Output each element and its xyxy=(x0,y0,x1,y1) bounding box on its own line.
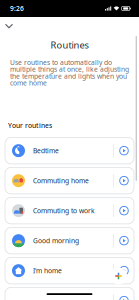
button[interactable]: Good morning xyxy=(0,227,139,254)
staticText: I'm home xyxy=(33,266,62,275)
staticText: Use routines to automatically do multipl… xyxy=(10,58,129,87)
staticText: Your routines xyxy=(8,121,52,130)
button[interactable]: Bedtime xyxy=(0,137,139,164)
button[interactable] xyxy=(0,287,139,300)
button[interactable]: Add routine xyxy=(109,266,128,285)
staticText: Routines xyxy=(50,39,88,51)
staticText: 9:26 xyxy=(10,4,24,13)
staticText: Commuting to work xyxy=(33,206,95,215)
staticText: Good morning xyxy=(33,236,79,245)
button[interactable]: Commuting to work xyxy=(0,197,139,224)
staticText: Bedtime xyxy=(33,146,59,155)
button[interactable]: Close xyxy=(0,19,18,33)
staticText: Commuting home xyxy=(33,176,89,185)
button[interactable]: Commuting home xyxy=(0,167,139,194)
button[interactable]: I'm home xyxy=(0,257,139,284)
